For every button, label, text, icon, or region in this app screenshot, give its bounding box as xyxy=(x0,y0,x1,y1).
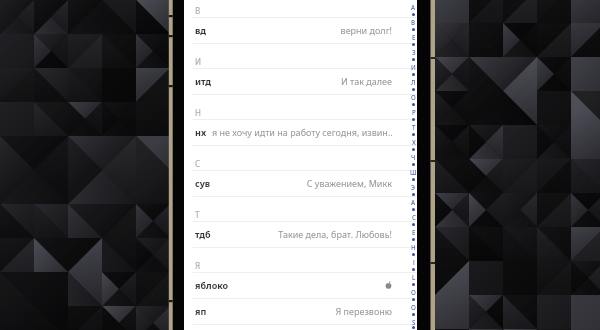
staticText: яблоко xyxy=(195,279,229,291)
staticText: Р xyxy=(412,108,416,115)
staticText: Я xyxy=(195,260,201,271)
button[interactable]: нх xyxy=(184,120,417,145)
staticText: нх xyxy=(195,126,207,138)
staticText: A xyxy=(411,198,416,205)
staticText: Ч xyxy=(411,153,416,160)
staticText: сув xyxy=(195,177,211,189)
staticText: Э xyxy=(411,183,416,190)
staticText: Q xyxy=(411,303,416,310)
staticText: Такие дела, брат. Любовь! xyxy=(215,228,392,240)
staticText: яп xyxy=(195,305,207,317)
staticText: итд xyxy=(195,75,211,87)
button[interactable]: вд xyxy=(184,18,417,43)
button[interactable]: итд xyxy=(184,69,417,94)
button[interactable]: Alphabet index xyxy=(185,3,418,330)
staticText: И так далее xyxy=(215,75,392,87)
staticText: Е xyxy=(412,33,416,40)
staticText: S xyxy=(412,318,416,325)
staticText: тдб xyxy=(195,228,211,240)
staticText: O xyxy=(411,288,416,295)
staticText: E xyxy=(412,228,416,235)
staticText: J xyxy=(413,258,415,265)
button[interactable]: тдб xyxy=(184,222,417,247)
staticText: О xyxy=(411,93,416,100)
staticText: В xyxy=(195,5,201,16)
staticText: В xyxy=(411,18,416,25)
staticText: С xyxy=(195,158,201,169)
staticText: верни долг! xyxy=(211,24,392,36)
staticText: Т xyxy=(412,123,416,130)
staticText: L xyxy=(412,273,416,280)
button[interactable]: сув xyxy=(184,171,417,196)
staticText: И xyxy=(411,63,416,70)
staticText: З xyxy=(412,48,416,55)
staticText: вд xyxy=(195,24,207,36)
staticText: Т xyxy=(195,209,200,220)
button[interactable]: яблоко xyxy=(184,273,417,298)
staticText: Ш xyxy=(410,168,417,175)
staticText: А xyxy=(411,3,416,10)
staticText: Я перезвоню xyxy=(211,305,392,317)
staticText: H xyxy=(411,243,416,250)
staticText: И xyxy=(195,56,202,67)
button[interactable]: яп xyxy=(184,299,417,324)
staticText: C xyxy=(412,213,416,220)
staticText: Н xyxy=(195,107,201,118)
staticText: Х xyxy=(412,138,416,145)
staticText: я не хочу идти на работу сегодня, извин… xyxy=(211,126,392,138)
staticText: С уважением, Микк xyxy=(215,177,392,189)
staticText: Л xyxy=(411,78,416,85)
